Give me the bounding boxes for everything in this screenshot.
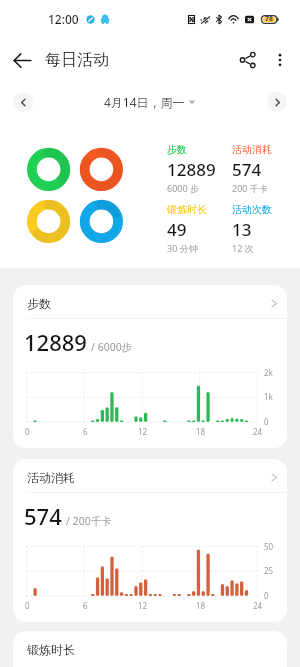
- button[interactable]: 活动消耗: [13, 459, 287, 622]
- staticText: 574: [232, 158, 262, 181]
- button[interactable]: 4月14日，周一: [98, 91, 202, 113]
- button[interactable]: 活动次数: [232, 203, 294, 254]
- button[interactable]: Next day: [267, 92, 287, 112]
- button[interactable]: 步数: [167, 143, 229, 194]
- staticText: 50: [264, 541, 274, 552]
- staticText: 锻炼时长: [167, 203, 207, 216]
- staticText: 0: [25, 600, 30, 611]
- button[interactable]: Previous day: [13, 92, 33, 112]
- staticText: 步数: [27, 296, 51, 311]
- staticText: 12: [138, 600, 148, 611]
- staticText: 4月14日，周一: [104, 94, 185, 110]
- button[interactable]: More options: [264, 44, 296, 76]
- staticText: / 6000步: [91, 340, 133, 354]
- staticText: 18: [196, 600, 206, 611]
- button[interactable]: Share: [232, 44, 264, 76]
- staticText: 步数: [167, 143, 187, 156]
- staticText: 24: [253, 426, 263, 437]
- button[interactable]: 锻炼时长: [167, 203, 229, 254]
- staticText: 30 分钟: [167, 242, 198, 254]
- button[interactable]: 锻炼时长: [13, 631, 287, 667]
- staticText: 0: [264, 416, 269, 427]
- staticText: 25: [264, 565, 274, 576]
- staticText: / 200千卡: [66, 514, 112, 528]
- staticText: 每日活动: [45, 50, 109, 70]
- staticText: 13: [232, 218, 252, 241]
- staticText: 活动次数: [232, 203, 272, 216]
- staticText: 0: [25, 426, 30, 437]
- staticText: 12 次: [232, 242, 254, 254]
- staticText: 49: [167, 218, 187, 241]
- staticText: 6000 步: [167, 182, 199, 194]
- staticText: 6: [83, 426, 88, 437]
- staticText: 78: [265, 14, 274, 24]
- staticText: 24: [253, 600, 263, 611]
- staticText: 12889: [24, 327, 87, 357]
- staticText: 574: [24, 501, 62, 531]
- staticText: 0: [264, 590, 269, 601]
- staticText: 12:00: [48, 11, 79, 27]
- staticText: 12: [138, 426, 148, 437]
- staticText: 18: [196, 426, 206, 437]
- staticText: 活动消耗: [232, 143, 272, 156]
- staticText: 活动消耗: [27, 470, 75, 485]
- staticText: 6: [83, 600, 88, 611]
- staticText: 锻炼时长: [27, 642, 75, 657]
- button[interactable]: Back: [6, 44, 38, 76]
- staticText: 12889: [167, 158, 216, 181]
- staticText: 1k: [264, 391, 273, 402]
- staticText: 200 千卡: [232, 182, 268, 194]
- button[interactable]: 活动消耗: [232, 143, 294, 194]
- staticText: 2k: [264, 367, 273, 378]
- button[interactable]: 步数: [13, 285, 287, 448]
